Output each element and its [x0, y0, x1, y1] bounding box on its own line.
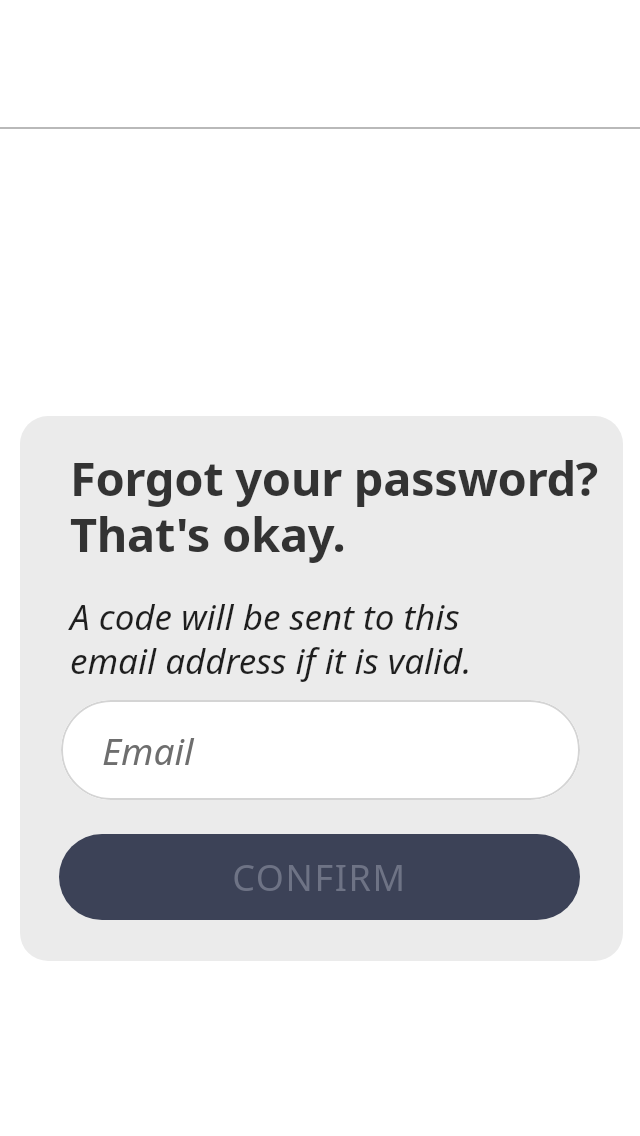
button[interactable]: Email: [61, 700, 580, 800]
staticText: Email: [102, 725, 194, 775]
staticText: A code will be sent to this email addres…: [70, 593, 472, 684]
staticText: CONFIRM: [232, 853, 407, 902]
button[interactable]: CONFIRM: [59, 834, 580, 920]
staticText: Forgot your password? That's okay.: [70, 446, 598, 566]
